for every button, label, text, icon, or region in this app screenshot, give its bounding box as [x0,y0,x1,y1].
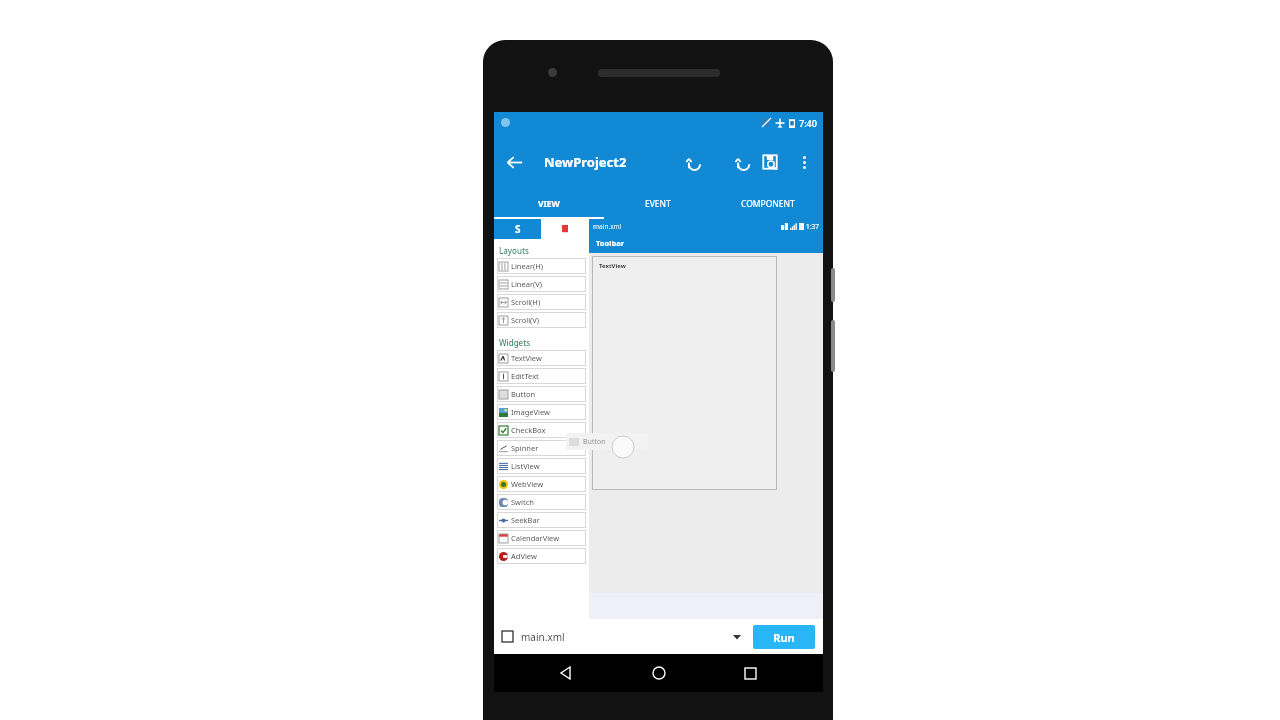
button[interactable]: Scroll(H) [497,294,586,310]
staticText: Linear(V) [511,279,543,289]
button[interactable]: AdView [497,548,586,564]
staticText: SeekBar [511,515,540,525]
staticText: ListView [511,461,540,471]
staticText: main.xml [593,222,622,231]
button[interactable]: VIEW [494,190,603,217]
button[interactable]: EditText [497,368,586,384]
staticText: TextView [511,353,542,363]
staticText: Linear(H) [511,261,544,271]
button[interactable]: Spinner [497,440,586,456]
staticText: Widgets [499,337,531,348]
button[interactable]: ListView [497,458,586,474]
button[interactable]: WebView [497,476,586,492]
button[interactable]: Select file [727,627,747,647]
staticText: EditText [511,371,539,381]
staticText: Toolbar [596,238,624,248]
staticText: Layouts [499,245,529,256]
staticText: Scroll(H) [511,297,541,307]
button[interactable]: EVENT [603,190,713,217]
button[interactable]: Views [494,219,541,239]
button[interactable]: Linear(V) [497,276,586,292]
button[interactable]: Linear(H) [497,258,586,274]
button[interactable]: Components [541,219,589,239]
button[interactable]: Back [548,654,586,692]
staticText: COMPONENT [741,198,795,210]
button[interactable]: Recents [731,654,769,692]
staticText: Scroll(V) [511,315,540,325]
button[interactable]: TextView [592,256,777,490]
staticText: Switch [511,497,534,507]
staticText: 1:37 [806,222,819,231]
button[interactable]: Redo [713,143,751,181]
button[interactable]: Save [751,143,789,181]
staticText: main.xml [521,630,565,644]
button[interactable]: Home [640,654,678,692]
button[interactable]: Run [753,625,815,649]
staticText: S [515,222,521,236]
staticText: CheckBox [511,425,546,435]
staticText: Button [511,389,536,399]
button[interactable]: TextView [497,350,586,366]
staticText: VIEW [538,198,560,210]
staticText: NewProject2 [544,153,627,171]
staticText: AdView [511,551,537,561]
button[interactable]: Scroll(V) [497,312,586,328]
button[interactable]: CheckBox [497,422,586,438]
button[interactable]: More options [789,147,819,177]
staticText: WebView [511,479,544,489]
button[interactable]: SeekBar [497,512,586,528]
button[interactable]: Button [497,386,586,402]
staticText: 7:40 [799,117,817,129]
button[interactable]: COMPONENT [713,190,823,217]
staticText: Button [583,437,606,447]
staticText: TextView [599,262,626,270]
button[interactable]: Switch [497,494,586,510]
staticText: Run [773,630,795,645]
staticText: CalendarView [511,533,560,543]
button[interactable]: Back [494,142,534,182]
staticText: Spinner [511,443,539,453]
button[interactable]: CalendarView [497,530,586,546]
staticText: EVENT [645,198,671,210]
button[interactable]: Undo [675,143,713,181]
button[interactable]: ImageView [497,404,586,420]
staticText: ImageView [511,407,551,417]
